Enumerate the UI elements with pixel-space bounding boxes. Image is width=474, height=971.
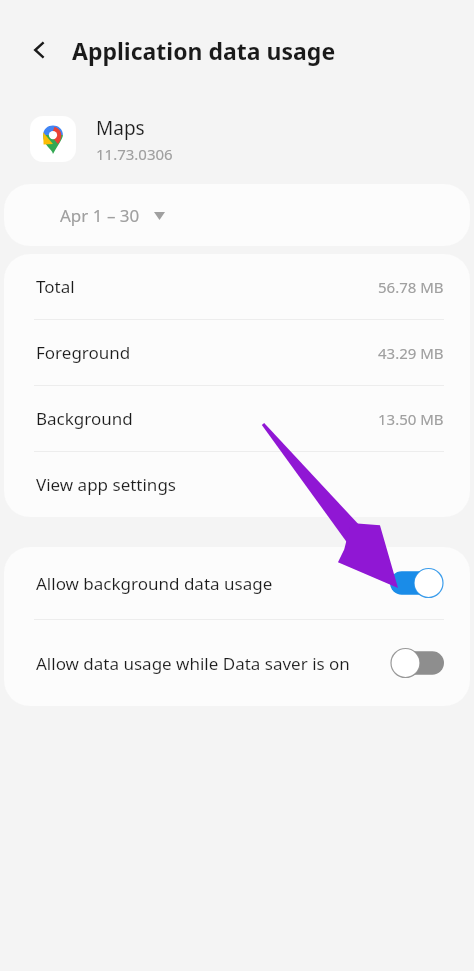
button[interactable]: Toggle off: [390, 648, 444, 678]
staticText: Foreground: [36, 341, 336, 364]
button[interactable]: Background: [4, 386, 470, 451]
button[interactable]: Back: [22, 32, 58, 68]
staticText: View app settings: [36, 473, 336, 496]
staticText: Maps: [96, 115, 145, 141]
staticText: Allow data usage while Data saver is on: [36, 652, 356, 675]
button[interactable]: Total: [4, 254, 470, 319]
button[interactable]: Apr 1 – 30: [4, 184, 470, 246]
staticText: 13.50 MB: [378, 409, 444, 429]
staticText: Application data usage: [72, 35, 336, 66]
staticText: Apr 1 – 30: [60, 204, 140, 227]
staticText: Total: [36, 275, 336, 298]
staticText: 11.73.0306: [96, 144, 173, 164]
button[interactable]: Allow background data usage: [4, 547, 470, 619]
staticText: 43.29 MB: [378, 343, 444, 363]
button[interactable]: Foreground: [4, 320, 470, 385]
button[interactable]: View app settings: [4, 452, 470, 517]
staticText: Allow background data usage: [36, 572, 390, 595]
staticText: 56.78 MB: [378, 277, 444, 297]
button[interactable]: Allow data usage while Data saver is on: [4, 620, 470, 706]
button[interactable]: Toggle on: [390, 568, 444, 598]
staticText: Background: [36, 407, 336, 430]
